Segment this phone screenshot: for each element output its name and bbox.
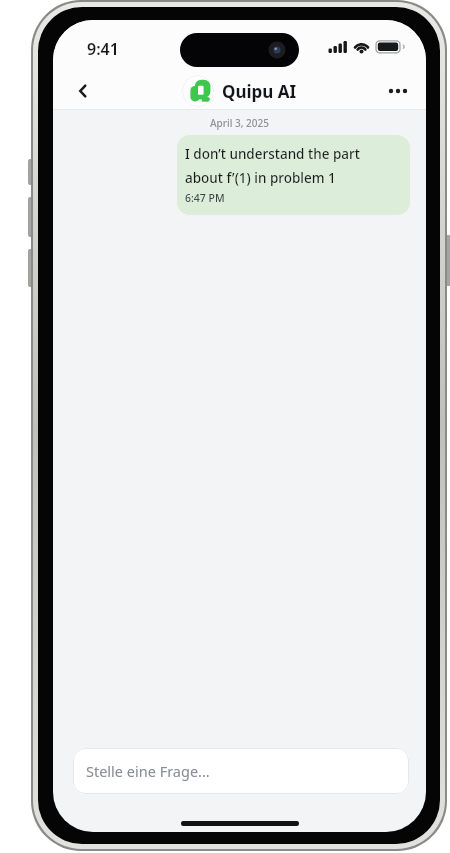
- button[interactable]: Quipu AI: [182, 75, 297, 107]
- staticText: 9:41: [87, 38, 119, 60]
- button[interactable]: Stelle eine Frage...: [73, 748, 409, 794]
- button[interactable]: [71, 79, 95, 103]
- staticText: Quipu AI: [222, 80, 297, 103]
- staticText: 6:47 PM: [185, 191, 225, 205]
- staticText: Stelle eine Frage...: [86, 761, 210, 781]
- button[interactable]: [383, 79, 413, 103]
- staticText: April 3, 2025: [210, 116, 269, 130]
- button[interactable]: I don’t understand the part about f’(1) …: [177, 135, 410, 215]
- staticText: I don’t understand the part about f’(1) …: [185, 140, 360, 188]
